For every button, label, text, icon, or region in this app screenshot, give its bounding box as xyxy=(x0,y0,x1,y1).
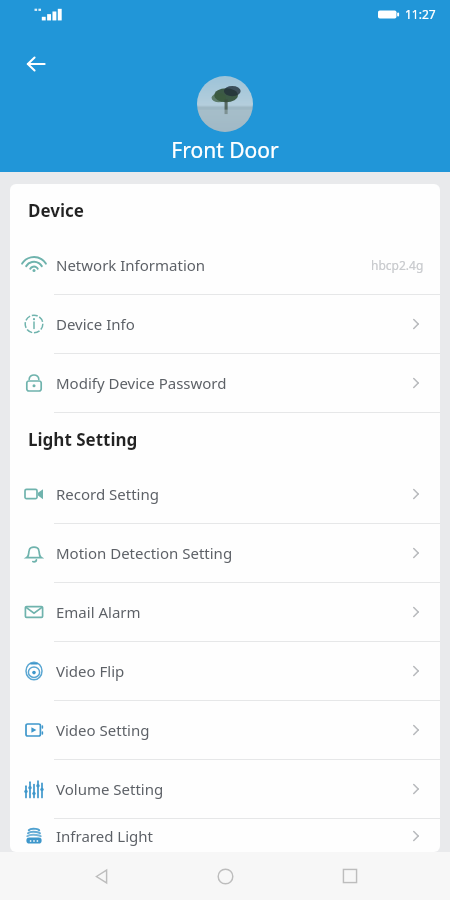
button[interactable]: Email Alarm xyxy=(10,583,440,641)
staticText: 11:27 xyxy=(405,6,436,22)
staticText: Volume Setting xyxy=(56,779,164,799)
staticText: Light Setting xyxy=(28,428,138,451)
button[interactable]: Video Setting xyxy=(10,701,440,759)
button[interactable]: Recents xyxy=(326,852,374,900)
staticText: Record Setting xyxy=(56,484,159,504)
button[interactable]: Video Flip xyxy=(10,642,440,700)
staticText: Email Alarm xyxy=(56,602,141,622)
staticText: Device xyxy=(28,199,84,222)
staticText: hbcp2.4g xyxy=(371,257,424,273)
button[interactable]: Motion Detection Setting xyxy=(10,524,440,582)
button[interactable]: Infrared Light xyxy=(10,819,440,852)
staticText: Modify Device Password xyxy=(56,373,227,393)
staticText: Front Door xyxy=(171,136,279,165)
staticText: Motion Detection Setting xyxy=(56,543,233,563)
button[interactable]: Volume Setting xyxy=(10,760,440,818)
staticText: Video Flip xyxy=(56,661,125,681)
staticText: Network Information xyxy=(56,255,206,275)
button[interactable]: Device Info xyxy=(10,295,440,353)
button[interactable]: Home xyxy=(201,852,249,900)
button[interactable]: Modify Device Password xyxy=(10,354,440,412)
staticText: Device Info xyxy=(56,314,135,334)
staticText: Video Setting xyxy=(56,720,150,740)
button[interactable]: Back xyxy=(16,44,56,84)
button[interactable]: Network Information xyxy=(10,236,440,294)
staticText: Infrared Light xyxy=(56,826,153,846)
button[interactable]: Back xyxy=(77,852,125,900)
button[interactable]: Record Setting xyxy=(10,465,440,523)
